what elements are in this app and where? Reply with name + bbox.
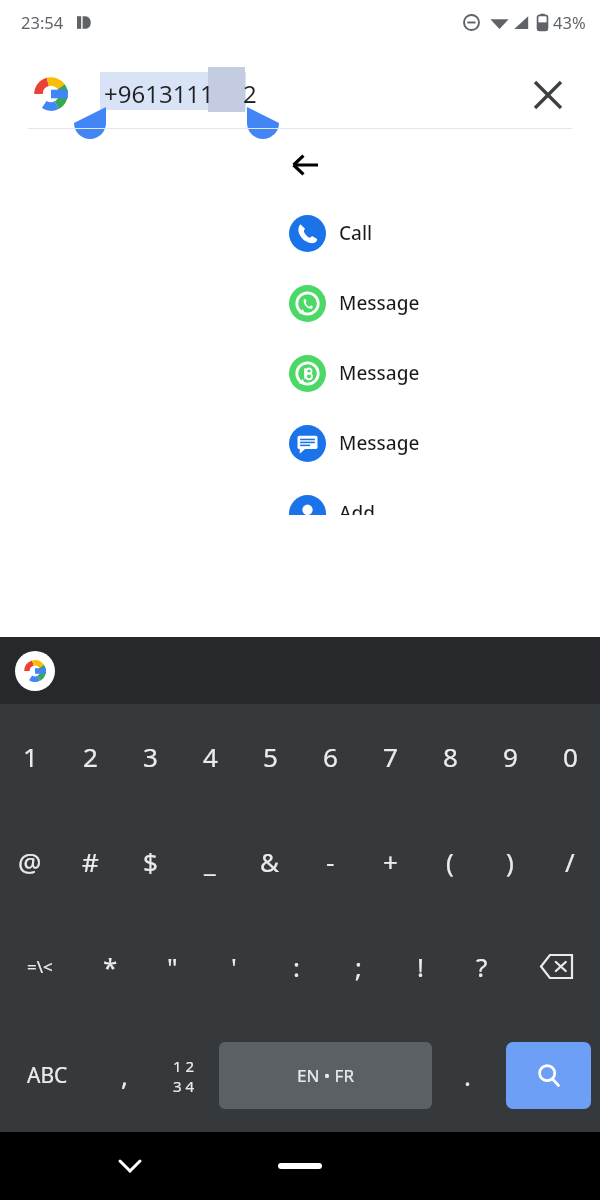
button[interactable]: 1 bbox=[0, 704, 60, 809]
staticText: ABC bbox=[27, 1061, 68, 1090]
button[interactable]: " bbox=[141, 914, 203, 1019]
staticText: 43% bbox=[553, 11, 586, 33]
button[interactable]: 7 bbox=[360, 704, 420, 809]
staticText: ! bbox=[417, 949, 424, 984]
staticText: 9 bbox=[503, 739, 518, 774]
button[interactable]: ? bbox=[451, 914, 513, 1019]
staticText: Add bbox=[339, 500, 376, 515]
button[interactable]: # bbox=[60, 809, 120, 914]
staticText: 8 bbox=[443, 739, 458, 774]
button[interactable]: Call bbox=[267, 207, 446, 259]
button[interactable]: : bbox=[265, 914, 327, 1019]
button[interactable]: =\< bbox=[0, 914, 79, 1019]
button[interactable]: Search bbox=[506, 1042, 591, 1109]
staticText: @ bbox=[18, 844, 42, 879]
button[interactable]: ( bbox=[420, 809, 480, 914]
button[interactable]: 4 bbox=[180, 704, 240, 809]
staticText: ? bbox=[476, 949, 488, 984]
button[interactable]: Backspace bbox=[513, 914, 600, 1019]
button[interactable]: 6 bbox=[300, 704, 360, 809]
staticText: Call bbox=[339, 220, 373, 246]
button[interactable]: EN • FR bbox=[219, 1042, 432, 1109]
staticText: +9613111 bbox=[104, 77, 214, 110]
button[interactable]: Back bbox=[281, 141, 329, 189]
button[interactable]: 1 2 bbox=[154, 1019, 214, 1132]
staticText: 1 2 bbox=[173, 1056, 195, 1076]
staticText: 2 bbox=[243, 77, 257, 110]
button[interactable]: Message bbox=[267, 417, 446, 469]
button[interactable]: 0 bbox=[540, 704, 600, 809]
button[interactable]: Add bbox=[267, 487, 446, 515]
button[interactable]: 8 bbox=[420, 704, 480, 809]
staticText: _ bbox=[204, 844, 216, 879]
button[interactable]: ) bbox=[480, 809, 540, 914]
staticText: & bbox=[260, 844, 280, 879]
button[interactable]: 9 bbox=[480, 704, 540, 809]
button[interactable]: - bbox=[300, 809, 360, 914]
button[interactable]: * bbox=[79, 914, 141, 1019]
staticText: 2 bbox=[83, 739, 98, 774]
button[interactable]: ' bbox=[203, 914, 265, 1019]
staticText: - bbox=[326, 844, 335, 879]
staticText: ' bbox=[231, 949, 237, 984]
staticText: 7 bbox=[383, 739, 398, 774]
button[interactable]: 5 bbox=[240, 704, 300, 809]
staticText: 3 bbox=[143, 739, 158, 774]
staticText: + bbox=[383, 844, 398, 879]
button[interactable]: ; bbox=[327, 914, 389, 1019]
staticText: Message bbox=[339, 290, 420, 316]
button[interactable]: ABC bbox=[0, 1019, 94, 1132]
button[interactable]: @ bbox=[0, 809, 60, 914]
button[interactable]: 2 bbox=[60, 704, 120, 809]
staticText: 5 bbox=[263, 739, 278, 774]
button[interactable]: 3 bbox=[120, 704, 180, 809]
staticText: =\< bbox=[27, 955, 53, 978]
staticText: Message bbox=[339, 430, 420, 456]
button[interactable]: ! bbox=[389, 914, 451, 1019]
staticText: 4 bbox=[203, 739, 218, 774]
button[interactable]: Clear query bbox=[524, 71, 572, 119]
button[interactable]: Message bbox=[267, 347, 446, 399]
staticText: : bbox=[293, 949, 300, 984]
staticText: ) bbox=[506, 844, 514, 879]
staticText: 3 4 bbox=[173, 1076, 195, 1096]
button[interactable]: , bbox=[94, 1019, 154, 1132]
staticText: $ bbox=[143, 844, 158, 879]
staticText: ( bbox=[446, 844, 454, 879]
staticText: * bbox=[103, 949, 118, 984]
button[interactable]: _ bbox=[180, 809, 240, 914]
staticText: " bbox=[167, 949, 178, 984]
button[interactable]: Google search options bbox=[12, 648, 58, 694]
staticText: . bbox=[464, 1058, 471, 1093]
staticText: 23:54 bbox=[21, 11, 64, 33]
staticText: # bbox=[82, 844, 99, 879]
button[interactable]: $ bbox=[120, 809, 180, 914]
button[interactable]: . bbox=[437, 1019, 497, 1132]
staticText: , bbox=[121, 1058, 128, 1093]
staticText: 6 bbox=[323, 739, 338, 774]
button[interactable]: Hide keyboard bbox=[106, 1142, 154, 1190]
staticText: / bbox=[565, 844, 575, 879]
staticText: EN • FR bbox=[297, 1064, 355, 1087]
button[interactable]: & bbox=[240, 809, 300, 914]
staticText: Message bbox=[339, 360, 420, 386]
staticText: 0 bbox=[563, 739, 578, 774]
button[interactable]: / bbox=[540, 809, 600, 914]
staticText: 1 bbox=[23, 739, 38, 774]
button[interactable]: + bbox=[360, 809, 420, 914]
staticText: ; bbox=[355, 949, 362, 984]
button[interactable]: Message bbox=[267, 277, 446, 329]
